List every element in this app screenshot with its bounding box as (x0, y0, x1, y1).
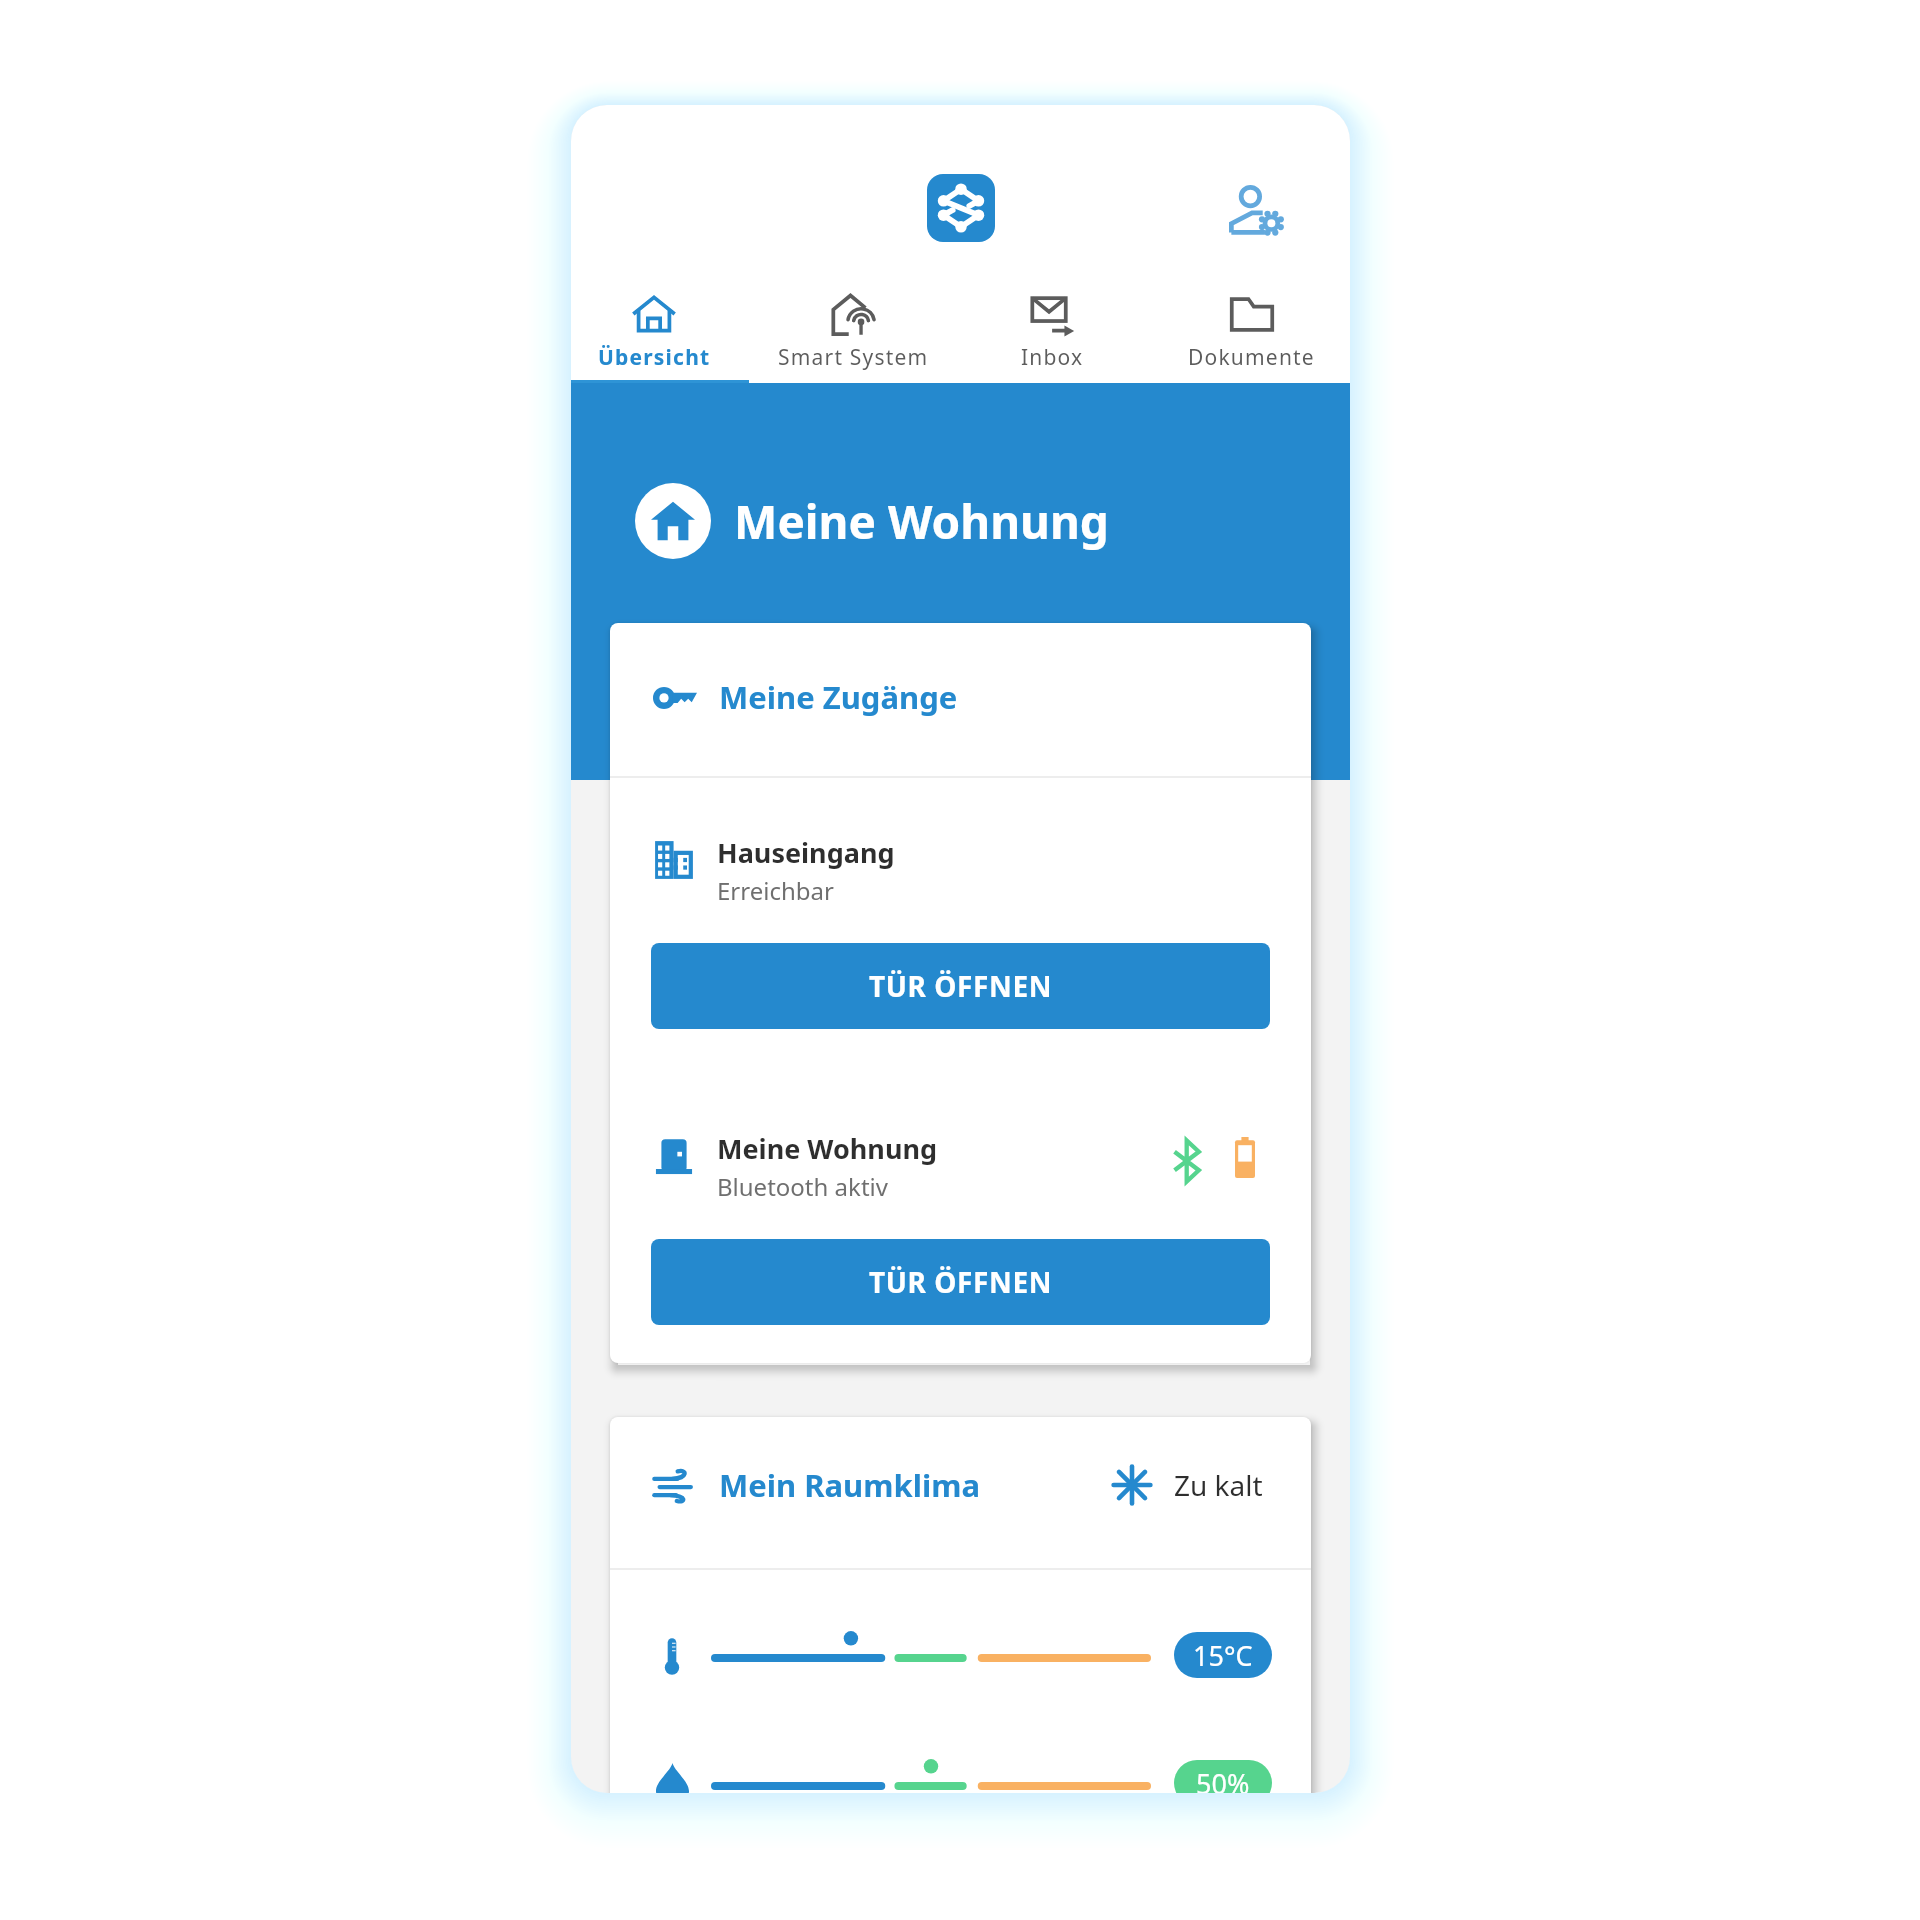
button[interactable]: Account settings (1224, 178, 1288, 242)
button[interactable]: Smart System (754, 278, 953, 380)
staticText: Übersicht (598, 343, 711, 372)
button[interactable]: App logo (927, 174, 995, 242)
staticText: TÜR ÖFFNEN (869, 1263, 1053, 1301)
staticText: TÜR ÖFFNEN (869, 967, 1053, 1005)
staticText: Bluetooth aktiv (717, 1170, 888, 1203)
staticText: Hauseingang (717, 834, 895, 871)
button[interactable]: TÜR ÖFFNEN (651, 943, 1270, 1029)
staticText: Mein Raumklima (719, 1464, 981, 1506)
staticText: Smart System (778, 343, 929, 372)
button[interactable]: TÜR ÖFFNEN (651, 1239, 1270, 1325)
button[interactable]: Übersicht (571, 278, 754, 380)
staticText: Meine Wohnung (734, 490, 1109, 553)
button[interactable]: 15°C (1174, 1632, 1272, 1678)
button[interactable]: Dokumente (1152, 278, 1350, 380)
button[interactable]: 50% (1174, 1760, 1272, 1793)
staticText: Inbox (1021, 343, 1084, 372)
staticText: Meine Wohnung (717, 1130, 938, 1167)
staticText: Meine Zugänge (719, 676, 958, 718)
staticText: Erreichbar (717, 874, 834, 907)
staticText: Zu kalt (1174, 1466, 1263, 1504)
staticText: Dokumente (1188, 343, 1315, 372)
staticText: 50% (1196, 1765, 1250, 1793)
button[interactable]: Inbox (953, 278, 1152, 380)
staticText: 15°C (1193, 1637, 1253, 1674)
